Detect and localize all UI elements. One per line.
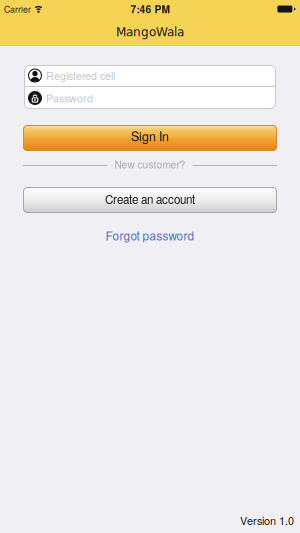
staticText: Registered cell	[46, 68, 115, 83]
button[interactable]: Registered cell	[24, 65, 276, 86]
staticText: Password	[46, 90, 93, 106]
button[interactable]: Forgot password	[105, 227, 194, 244]
button[interactable]: Sign In	[23, 125, 277, 151]
staticText: Create an account	[105, 191, 195, 207]
staticText: MangoWala	[116, 25, 184, 39]
staticText: Version 1.0	[240, 512, 294, 528]
staticText: 7:46 PM	[130, 2, 169, 16]
button[interactable]: Password	[24, 87, 276, 109]
button[interactable]: Create an account	[23, 187, 277, 213]
staticText: New customer?	[114, 157, 185, 171]
staticText: Forgot password	[105, 227, 194, 244]
staticText: Carrier	[4, 3, 31, 15]
staticText: Sign In	[131, 127, 169, 145]
